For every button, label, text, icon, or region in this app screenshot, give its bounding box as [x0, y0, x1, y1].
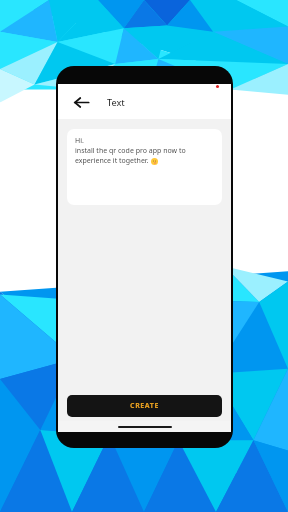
staticText: Text: [107, 96, 125, 108]
button[interactable]: CREATE: [67, 395, 222, 417]
staticText: Hi.: [75, 136, 84, 146]
staticText: experience it together.: [75, 156, 151, 166]
staticText: CREATE: [130, 401, 159, 411]
button[interactable]: Hi.: [67, 129, 222, 205]
staticText: install the qr code pro app now to: [75, 146, 186, 156]
button[interactable]: Back: [69, 90, 93, 114]
